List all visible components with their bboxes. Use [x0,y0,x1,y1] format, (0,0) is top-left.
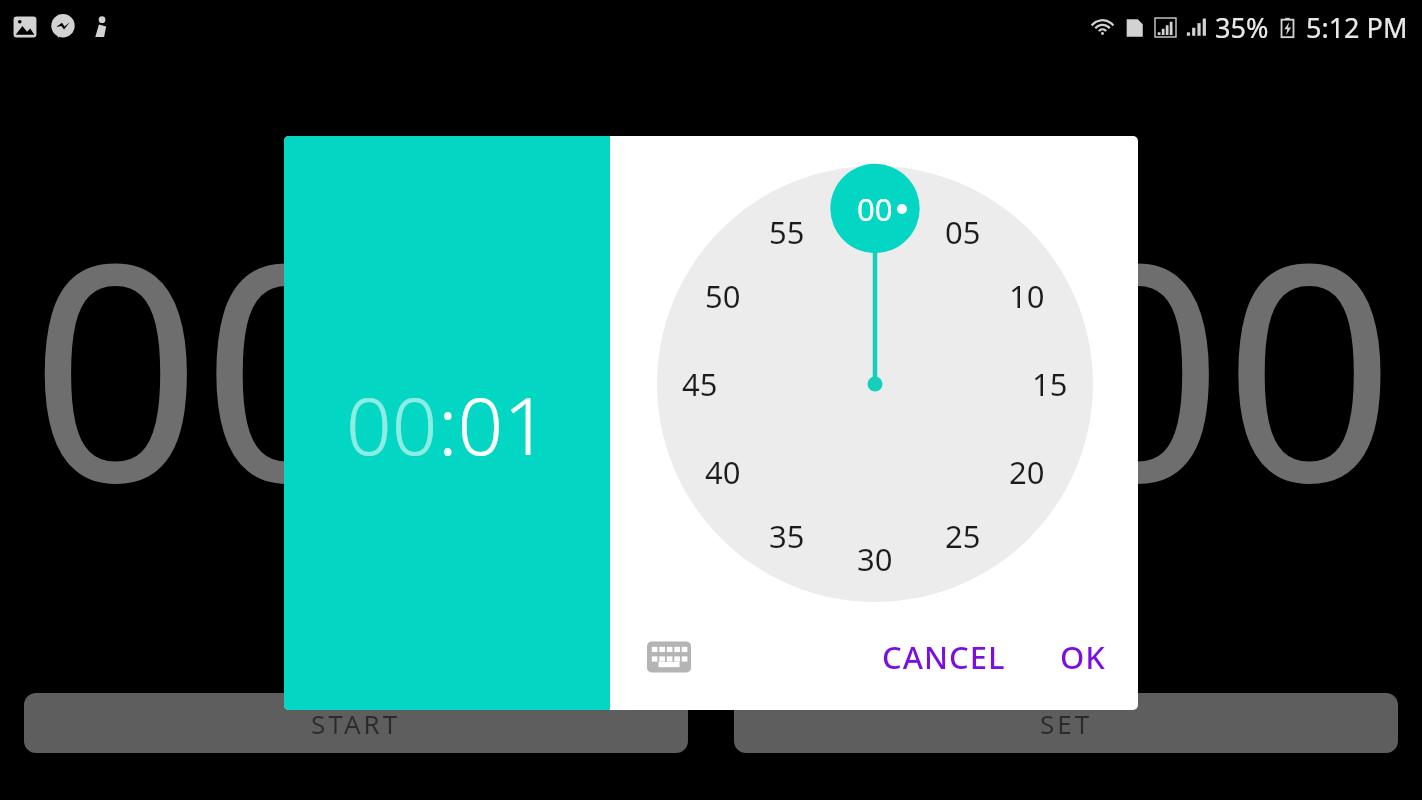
staticText: 5:12 PM [1306,9,1408,46]
staticText: 20 [1009,451,1045,493]
button[interactable]: CANCEL [868,626,1020,688]
staticText: 50 [705,275,741,317]
staticText: 00 [30,160,374,569]
staticText: OK [1060,636,1106,678]
button[interactable]: 00 [284,136,610,710]
staticText: 00 [857,188,893,230]
staticText: SET [1040,706,1093,741]
staticText: 00 [346,369,438,478]
button[interactable]: SET [734,693,1398,753]
staticText: 35 [769,515,805,557]
staticText: 35% [1215,9,1269,46]
staticText: 15 [1032,363,1068,405]
staticText: 40 [705,451,741,493]
button[interactable]: OK [1046,626,1120,688]
staticText: :01 [438,369,549,478]
staticText: 05 [945,211,981,253]
staticText: 30 [857,538,893,580]
staticText: 00 [1052,160,1396,569]
staticText: 55 [769,211,805,253]
button[interactable]: Switch to text input [640,628,698,686]
staticText: 10 [1009,275,1045,317]
staticText: 45 [682,363,718,405]
staticText: 25 [945,515,981,557]
button[interactable]: START [24,693,688,753]
staticText: START [311,706,401,741]
staticText: CANCEL [882,636,1006,678]
